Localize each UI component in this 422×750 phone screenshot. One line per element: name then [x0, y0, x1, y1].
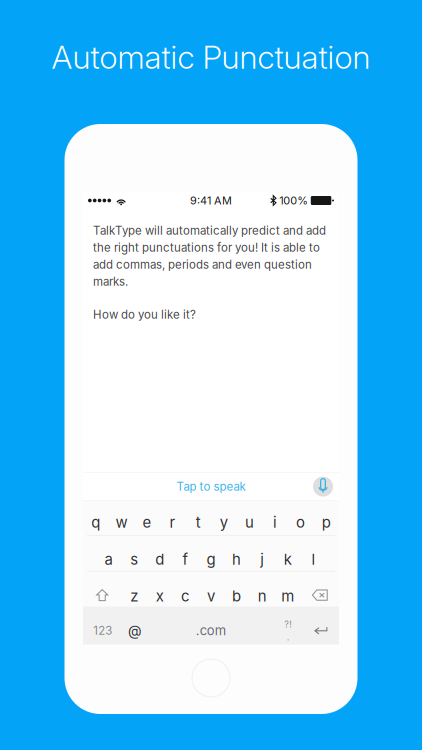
staticText: e: [142, 513, 151, 531]
button[interactable]: @: [123, 607, 147, 645]
button[interactable]: m: [275, 572, 301, 607]
button[interactable]: c: [173, 572, 198, 607]
button[interactable]: o: [288, 501, 313, 535]
button[interactable]: w: [109, 501, 134, 535]
button[interactable]: 123: [83, 607, 123, 645]
button[interactable]: z: [121, 572, 147, 607]
staticText: z: [130, 587, 138, 605]
button[interactable]: k: [275, 536, 301, 571]
button[interactable]: g: [198, 536, 224, 571]
button[interactable]: ?!: [274, 607, 302, 645]
staticText: q: [91, 513, 100, 531]
button[interactable]: Shift: [83, 572, 121, 607]
button[interactable]: Tap to speak: [83, 473, 339, 501]
button[interactable]: r: [160, 501, 185, 535]
button[interactable]: Delete: [301, 572, 339, 607]
button[interactable]: y: [211, 501, 237, 535]
button[interactable]: h: [224, 536, 249, 571]
button[interactable]: j: [249, 536, 275, 571]
button[interactable]: l: [301, 536, 326, 571]
staticText: x: [156, 587, 164, 605]
staticText: b: [232, 587, 241, 605]
staticText: 123: [93, 624, 112, 638]
staticText: c: [181, 587, 190, 605]
staticText: .: [287, 632, 290, 643]
staticText: v: [207, 587, 215, 605]
button[interactable]: s: [121, 536, 147, 571]
staticText: k: [284, 550, 292, 568]
staticText: d: [155, 550, 164, 568]
staticText: p: [322, 513, 331, 531]
staticText: w: [115, 513, 127, 531]
button[interactable]: t: [185, 501, 211, 535]
staticText: n: [258, 587, 267, 605]
staticText: .com: [196, 623, 226, 638]
button[interactable]: Dictate: [313, 477, 333, 497]
button[interactable]: n: [249, 572, 275, 607]
button[interactable]: a: [96, 536, 121, 571]
staticText: h: [232, 550, 241, 568]
staticText: ?!: [284, 619, 292, 630]
staticText: r: [170, 513, 176, 531]
button[interactable]: f: [173, 536, 198, 571]
button[interactable]: i: [262, 501, 288, 535]
staticText: t: [196, 513, 201, 531]
staticText: 100%: [279, 194, 308, 207]
staticText: l: [311, 550, 315, 568]
staticText: y: [220, 513, 228, 531]
button[interactable]: d: [147, 536, 173, 571]
staticText: 9:41 AM: [190, 194, 232, 207]
staticText: s: [130, 550, 138, 568]
button[interactable]: .com: [147, 607, 274, 645]
staticText: Tap to speak: [176, 480, 245, 494]
staticText: f: [182, 550, 188, 568]
staticText: i: [273, 513, 277, 531]
staticText: j: [260, 550, 264, 568]
staticText: the right punctuations for you! It is ab…: [93, 241, 320, 254]
button[interactable]: q: [83, 501, 109, 535]
staticText: TalkType will automatically predict and …: [93, 224, 326, 237]
staticText: u: [245, 513, 254, 531]
button[interactable]: e: [134, 501, 160, 535]
button[interactable]: Return: [302, 607, 339, 645]
button[interactable]: p: [313, 501, 339, 535]
staticText: o: [296, 513, 305, 531]
staticText: How do you like it?: [93, 308, 196, 321]
staticText: @: [128, 622, 142, 639]
staticText: g: [206, 550, 215, 568]
button[interactable]: b: [224, 572, 249, 607]
staticText: a: [105, 550, 113, 568]
staticText: Automatic Punctuation: [51, 38, 370, 76]
button[interactable]: u: [237, 501, 262, 535]
staticText: marks.: [93, 275, 128, 288]
button[interactable]: v: [198, 572, 224, 607]
button[interactable]: x: [147, 572, 173, 607]
staticText: m: [281, 587, 294, 605]
staticText: add commas, periods and even question: [93, 258, 312, 271]
